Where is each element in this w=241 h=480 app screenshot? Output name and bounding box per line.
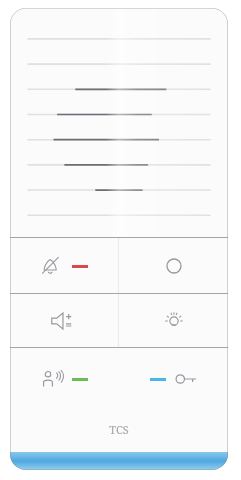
button[interactable]: Status indicator (119, 238, 228, 293)
other: Talk (42, 369, 62, 389)
other: Mute ringer (41, 256, 61, 276)
other: Open door (175, 372, 197, 386)
button[interactable]: Talk (10, 348, 119, 410)
button[interactable]: Volume (10, 294, 118, 347)
button[interactable]: Light (119, 294, 228, 347)
staticText: TCS (109, 422, 129, 437)
button[interactable]: Open door (119, 348, 228, 410)
button[interactable]: Mute ringer (10, 238, 118, 293)
